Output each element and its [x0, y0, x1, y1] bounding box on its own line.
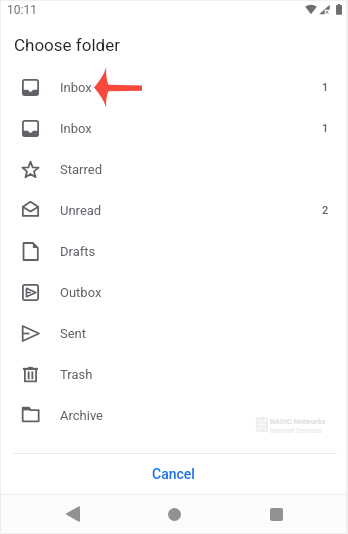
button[interactable]: Trash — [1, 354, 346, 395]
staticText: Sent — [60, 326, 87, 341]
button[interactable]: Recents — [225, 495, 327, 533]
staticText: Outbox — [60, 285, 102, 300]
staticText: Archive — [60, 408, 103, 423]
button[interactable]: Archive — [1, 395, 346, 436]
staticText: BASIC Networks — [270, 417, 326, 426]
staticText: Drafts — [60, 244, 96, 259]
staticText: Choose folder — [14, 35, 120, 55]
button[interactable]: Starred — [1, 149, 346, 190]
staticText: 1 — [322, 81, 329, 94]
button[interactable]: Home — [123, 495, 225, 533]
button[interactable]: Unread — [1, 190, 346, 231]
button[interactable]: Drafts — [1, 231, 346, 272]
staticText: 2 — [322, 204, 329, 217]
staticText: 1 — [322, 122, 329, 135]
button[interactable]: Inbox — [1, 108, 346, 149]
staticText: Cancel — [152, 466, 195, 482]
staticText: Inbox — [60, 121, 92, 136]
button[interactable]: Cancel — [1, 454, 346, 494]
staticText: Unread — [60, 203, 102, 218]
staticText: Inbox — [60, 80, 92, 95]
button[interactable]: Sent — [1, 313, 346, 354]
button[interactable]: Outbox — [1, 272, 346, 313]
staticText: 10:11 — [7, 3, 37, 17]
button[interactable]: Inbox — [1, 67, 346, 108]
staticText: Starred — [60, 162, 102, 177]
button[interactable]: Back — [22, 495, 123, 533]
staticText: Internet Services — [270, 427, 323, 435]
staticText: Trash — [60, 367, 93, 382]
